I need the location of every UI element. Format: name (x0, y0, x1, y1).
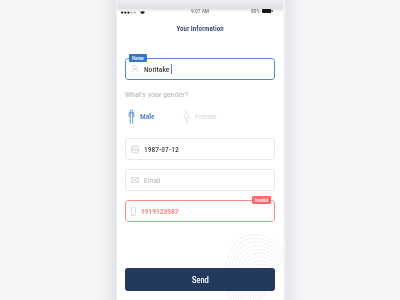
staticText: 80% (251, 8, 260, 14)
button[interactable]: Male (129, 109, 155, 124)
staticText: Email (144, 176, 161, 185)
staticText: Noritake (144, 65, 170, 74)
staticText: What's your gender? (125, 90, 189, 99)
button[interactable]: Female (184, 109, 217, 124)
staticText: Your Information (117, 25, 283, 33)
button[interactable]: 1987-07-12 (125, 138, 275, 160)
button[interactable]: Email (125, 169, 275, 191)
button[interactable]: Send (125, 268, 275, 291)
staticText: Name (132, 55, 144, 61)
button[interactable]: 1919123987 (125, 200, 275, 222)
staticText: Send (192, 275, 209, 285)
staticText: Male (140, 112, 155, 121)
staticText: 1919123987 (141, 207, 179, 216)
staticText: Invalid (255, 197, 268, 203)
staticText: 9:07 AM (117, 8, 283, 14)
staticText: Female (195, 112, 217, 121)
staticText: 1987-07-12 (144, 145, 179, 154)
button[interactable]: Noritake (125, 58, 275, 80)
